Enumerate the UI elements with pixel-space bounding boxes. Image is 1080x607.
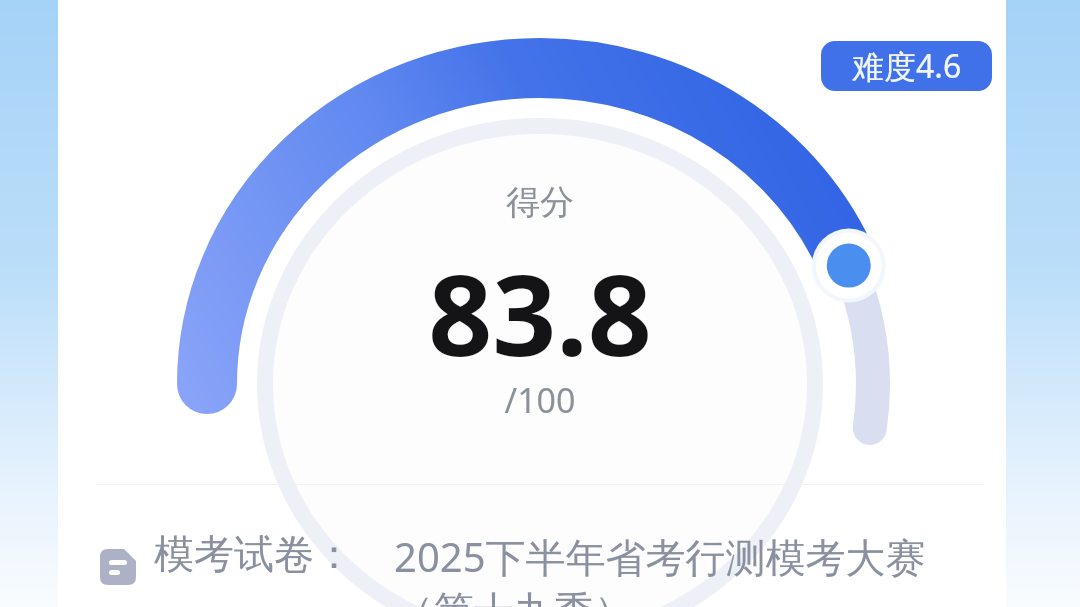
staticText: 模考试卷： — [154, 529, 354, 579]
staticText: 83.8 — [0, 236, 1080, 389]
button[interactable]: 试卷 — [100, 529, 984, 607]
staticText: 难度4.6 — [852, 44, 962, 88]
other: 试卷 — [100, 549, 136, 585]
staticText: 2025下半年省考行测模考大赛（第十九季） — [394, 529, 984, 607]
button[interactable]: 难度4.6 — [821, 41, 992, 91]
staticText: 得分 — [0, 181, 1080, 224]
staticText: /100 — [0, 377, 1080, 423]
